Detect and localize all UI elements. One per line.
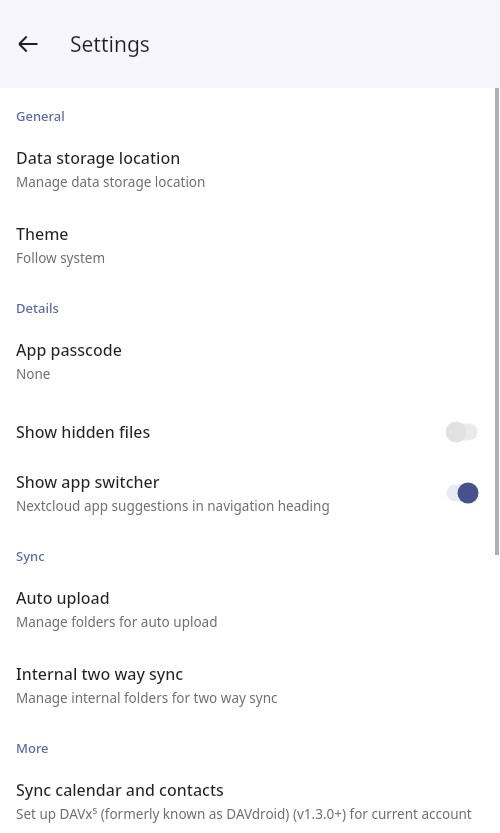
staticText: Set up DAVx⁵ (formerly known as DAVdroid… <box>16 805 472 823</box>
button[interactable]: Sync calendar and contacts <box>0 757 500 823</box>
button[interactable]: Auto upload <box>0 565 500 631</box>
button[interactable]: Data storage location <box>0 125 500 191</box>
button[interactable]: Show app switcher <box>0 445 500 515</box>
staticText: Sync calendar and contacts <box>16 779 224 801</box>
staticText: Show app switcher <box>16 471 160 493</box>
staticText: Manage internal folders for two way sync <box>16 689 278 707</box>
button[interactable]: Show app switcher <box>440 480 484 506</box>
staticText: Theme <box>16 223 69 245</box>
staticText: Internal two way sync <box>16 663 184 685</box>
staticText: Show hidden files <box>16 421 151 443</box>
button[interactable]: Theme <box>0 191 500 267</box>
button[interactable]: Internal two way sync <box>0 631 500 707</box>
staticText: Follow system <box>16 249 106 267</box>
button[interactable]: Show hidden files <box>440 419 484 445</box>
button[interactable]: Show hidden files <box>0 383 500 445</box>
staticText: More <box>16 739 49 757</box>
staticText: Auto upload <box>16 587 110 609</box>
staticText: General <box>16 107 65 125</box>
staticText: Nextcloud app suggestions in navigation … <box>16 497 330 515</box>
staticText: Manage folders for auto upload <box>16 613 218 631</box>
staticText: None <box>16 365 51 383</box>
button[interactable]: App passcode <box>0 317 500 383</box>
staticText: Data storage location <box>16 147 181 169</box>
staticText: Details <box>16 299 59 317</box>
button[interactable]: Back <box>8 24 48 64</box>
staticText: Sync <box>16 547 45 565</box>
staticText: App passcode <box>16 339 122 361</box>
staticText: Manage data storage location <box>16 173 206 191</box>
staticText: Settings <box>70 30 150 59</box>
